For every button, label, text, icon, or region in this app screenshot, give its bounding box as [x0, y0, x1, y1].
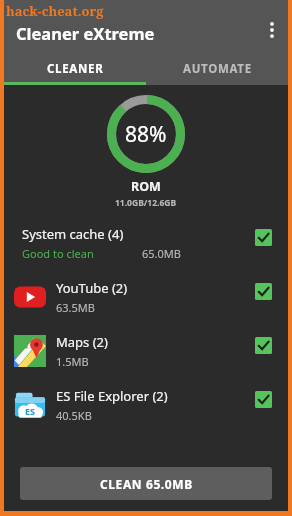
staticText: Cleaner eXtreme	[16, 22, 155, 44]
button[interactable]: Toggle Maps (2)	[238, 324, 288, 378]
button[interactable]: Toggle YouTube (2)	[238, 270, 288, 324]
button[interactable]: System cache (4)	[4, 216, 288, 270]
staticText: 65.0MB	[142, 246, 181, 261]
button[interactable]: Maps (2)	[4, 324, 288, 378]
staticText: 88%	[125, 120, 167, 149]
staticText: AUTOMATE	[183, 61, 252, 77]
staticText: CLEAN 65.0MB	[100, 476, 193, 492]
staticText: 11.0GB/12.6GB	[115, 197, 177, 209]
staticText: Good to clean	[22, 246, 94, 261]
button[interactable]: Toggle System cache (4)	[238, 216, 288, 270]
button[interactable]: Toggle ES File Explorer (2)	[238, 378, 288, 432]
staticText: ES File Explorer (2)	[56, 387, 168, 405]
staticText: 1.5MB	[56, 354, 89, 369]
button[interactable]: More options	[256, 14, 288, 46]
staticText: YouTube (2)	[56, 279, 128, 297]
staticText: ES	[25, 405, 35, 417]
staticText: hack-cheat.org	[6, 2, 104, 20]
staticText: 40.5KB	[56, 408, 92, 423]
staticText: 63.5MB	[56, 300, 95, 315]
button[interactable]: ES	[4, 378, 288, 432]
staticText: ROM	[131, 178, 161, 195]
staticText: System cache (4)	[22, 225, 124, 243]
staticText: Maps (2)	[56, 333, 108, 351]
staticText: CLEANER	[47, 61, 104, 77]
button[interactable]: CLEANER	[4, 53, 146, 85]
button[interactable]: YouTube (2)	[4, 270, 288, 324]
button[interactable]: AUTOMATE	[146, 53, 288, 85]
button[interactable]: CLEAN 65.0MB	[20, 467, 272, 500]
